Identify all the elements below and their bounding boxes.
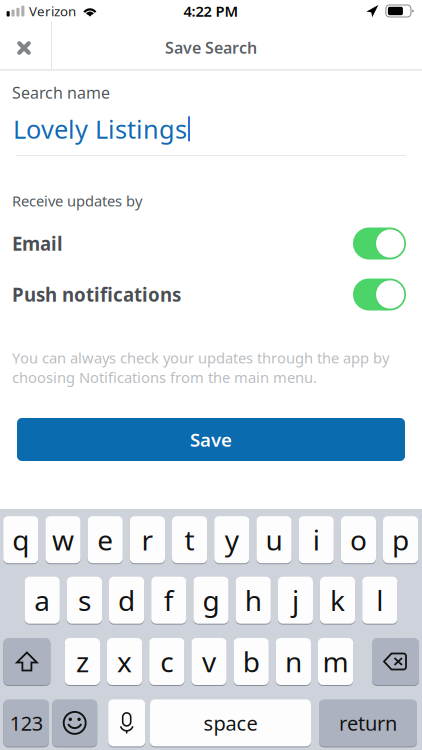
staticText: c [160, 643, 173, 680]
staticText: h [245, 582, 262, 619]
staticText: k [330, 582, 345, 619]
staticText: 123 [10, 710, 43, 736]
button[interactable]: o [341, 516, 376, 563]
staticText: a [34, 582, 50, 619]
staticText: Verizon [29, 2, 76, 20]
button[interactable]: Shift [3, 638, 50, 685]
button[interactable]: Email [0, 218, 422, 269]
button[interactable]: c [149, 638, 184, 685]
staticText: g [202, 582, 219, 619]
staticText: j [292, 582, 299, 619]
button[interactable]: z [65, 638, 100, 685]
staticText: s [78, 582, 91, 619]
button[interactable]: return [319, 699, 417, 746]
button[interactable]: Dictate [108, 699, 145, 746]
staticText: p [392, 521, 409, 558]
staticText: Save [190, 427, 232, 452]
staticText: m [323, 643, 349, 680]
button[interactable]: Close [0, 22, 51, 69]
button[interactable]: l [362, 577, 397, 624]
button[interactable]: Push notifications [0, 269, 422, 320]
button[interactable]: a [25, 577, 60, 624]
staticText: return [339, 710, 397, 736]
staticText: t [185, 521, 195, 558]
button[interactable]: k [320, 577, 355, 624]
staticText: w [52, 521, 74, 558]
button[interactable]: Save [17, 418, 405, 461]
staticText: o [350, 521, 367, 558]
staticText: q [12, 521, 29, 558]
staticText: Lovely Listings [13, 112, 187, 146]
button[interactable]: f [151, 577, 186, 624]
staticText: v [202, 643, 216, 680]
staticText: i [313, 521, 320, 558]
staticText: space [203, 710, 257, 736]
staticText: f [164, 582, 174, 619]
button[interactable]: w [45, 516, 81, 563]
button[interactable]: j [278, 577, 313, 624]
staticText: x [117, 643, 132, 680]
staticText: u [265, 521, 282, 558]
button[interactable]: v [191, 638, 227, 685]
button[interactable]: p [383, 516, 418, 563]
button[interactable]: t [172, 516, 207, 563]
button[interactable]: u [256, 516, 292, 563]
button[interactable]: space [150, 699, 311, 746]
button[interactable]: r [130, 516, 165, 563]
staticText: Email [12, 231, 63, 256]
staticText: b [243, 643, 260, 680]
button[interactable]: q [3, 516, 38, 563]
button[interactable]: y [214, 516, 249, 563]
staticText: e [97, 521, 113, 558]
button[interactable]: s [67, 577, 102, 624]
staticText: z [76, 643, 89, 680]
button[interactable]: d [109, 577, 144, 624]
staticText: Receive updates by [12, 191, 142, 210]
button[interactable]: x [107, 638, 142, 685]
staticText: r [141, 521, 153, 558]
staticText: Push notifications [12, 282, 181, 307]
staticText: l [376, 582, 383, 619]
button[interactable]: b [234, 638, 269, 685]
button[interactable]: h [236, 577, 271, 624]
staticText: d [118, 582, 135, 619]
staticText: Search name [12, 82, 110, 103]
staticText: y [225, 521, 239, 558]
button[interactable]: n [276, 638, 311, 685]
staticText: 4:22 PM [183, 1, 238, 21]
staticText: Save Search [165, 37, 257, 58]
button[interactable]: Emoji [52, 699, 97, 746]
staticText: n [285, 643, 302, 680]
button[interactable]: Numbers [3, 699, 49, 746]
staticText: You can always check your updates throug… [12, 348, 389, 387]
button[interactable]: Delete [372, 638, 419, 685]
button[interactable]: g [193, 577, 229, 624]
button[interactable]: m [318, 638, 353, 685]
button[interactable]: i [299, 516, 334, 563]
button[interactable]: e [88, 516, 123, 563]
